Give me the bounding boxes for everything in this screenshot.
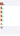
staticText: Row [0, 3, 3, 13]
staticText: Row [0, 7, 3, 17]
staticText: Row [0, 19, 3, 29]
staticText: Row [0, 15, 3, 25]
staticText: Row [0, 11, 3, 21]
staticText: Settings [0, 0, 4, 22]
